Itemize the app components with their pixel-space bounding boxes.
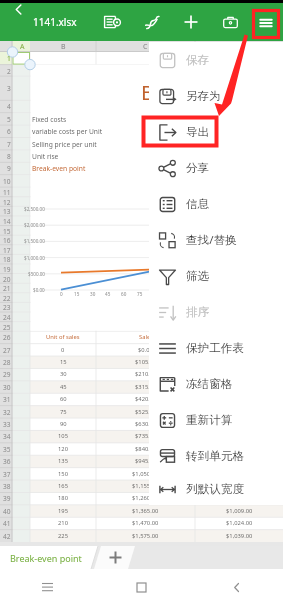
button[interactable]: Insert	[175, 6, 207, 38]
staticText: 5	[7, 115, 11, 124]
button[interactable]: 重新计算	[149, 402, 283, 438]
staticText: 转到单元格	[186, 449, 244, 464]
button[interactable]: Recent apps	[30, 570, 64, 604]
staticText: $1,050.00	[132, 470, 159, 478]
staticText: 14	[3, 217, 11, 226]
staticText: 35	[3, 445, 11, 454]
staticText: 27	[3, 346, 11, 355]
staticText: 排序	[186, 305, 210, 320]
staticText: 29	[3, 370, 11, 379]
staticText: 16	[3, 236, 11, 245]
button[interactable]: 分享	[149, 150, 283, 186]
staticText: B	[141, 78, 155, 102]
button[interactable]: Ink	[136, 6, 168, 38]
staticText: 30	[90, 291, 96, 297]
button[interactable]: 转到单元格	[149, 438, 283, 474]
button[interactable]: 查找/替换	[149, 222, 283, 258]
staticText: 60	[121, 291, 127, 297]
button[interactable]: 冻结窗格	[149, 366, 283, 402]
staticText: 165	[58, 482, 68, 490]
staticText: 180	[58, 494, 68, 502]
staticText: Unit rise	[32, 152, 59, 161]
staticText: 15	[74, 291, 80, 297]
staticText: Unit of sales	[46, 333, 80, 341]
staticText: 45	[105, 291, 111, 297]
staticText: 另存为	[186, 89, 221, 104]
staticText: 120	[58, 445, 68, 453]
staticText: $1,365.00	[132, 507, 159, 515]
staticText: 0	[60, 291, 63, 297]
staticText: $0.00	[33, 287, 45, 293]
staticText: 20	[3, 275, 11, 284]
staticText: 39	[3, 494, 11, 503]
staticText: B	[61, 42, 66, 52]
button[interactable]: 筛选	[149, 258, 283, 294]
button[interactable]: Back	[2, 0, 34, 25]
staticText: 3	[7, 84, 11, 93]
staticText: 1141.xlsx	[33, 15, 77, 29]
staticText: A	[20, 42, 25, 52]
button[interactable]: 列默认宽度	[149, 474, 283, 505]
staticText: 分享	[186, 161, 210, 176]
staticText: 7	[7, 140, 11, 149]
button[interactable]: 另存为	[149, 78, 283, 114]
staticText: 32	[3, 408, 11, 417]
button[interactable]: Menu	[250, 7, 282, 39]
staticText: 保存	[186, 53, 210, 68]
staticText: Sales	[139, 333, 153, 341]
staticText: $315.00	[135, 383, 157, 391]
staticText: 41	[3, 519, 11, 528]
button[interactable]: Home	[124, 570, 158, 604]
staticText: 31	[3, 395, 11, 404]
staticText: 15	[3, 227, 11, 236]
staticText: 23	[3, 303, 11, 312]
staticText: Fixed costs	[32, 115, 67, 124]
staticText: $0.00	[138, 346, 153, 354]
staticText: 8	[7, 152, 11, 161]
staticText: $210.00	[135, 370, 157, 378]
staticText: 25	[3, 323, 11, 332]
button[interactable]: Back	[219, 570, 253, 604]
staticText: 列默认宽度	[186, 482, 244, 497]
button[interactable]: Tools	[214, 6, 246, 38]
staticText: 37	[3, 470, 11, 479]
staticText: Selling price per unit	[32, 140, 97, 149]
staticText: 1	[7, 54, 11, 63]
staticText: 26	[3, 333, 11, 342]
button[interactable]: 保护工作表	[149, 330, 283, 366]
staticText: $1,260.00	[132, 494, 159, 502]
button[interactable]: 信息	[149, 186, 283, 222]
staticText: 6	[7, 127, 11, 136]
staticText: 195	[58, 507, 68, 515]
staticText: 信息	[186, 197, 210, 212]
staticText: 冻结窗格	[186, 377, 233, 392]
staticText: 38	[3, 482, 11, 491]
staticText: $945.00	[135, 457, 157, 465]
button[interactable]: 排序	[149, 294, 283, 330]
button[interactable]: Add sheet	[98, 546, 132, 569]
staticText: 60	[60, 395, 67, 403]
button[interactable]: Break-even point	[0, 546, 92, 569]
staticText: 17	[3, 246, 11, 255]
staticText: 150	[58, 470, 68, 478]
staticText: 90	[60, 420, 67, 428]
staticText: $1,039.00	[226, 532, 253, 540]
staticText: $840.00	[135, 445, 157, 453]
staticText: 30	[60, 370, 67, 378]
button[interactable]: 导出	[149, 114, 283, 150]
staticText: 19	[3, 265, 11, 274]
staticText: $1,470.00	[132, 519, 159, 527]
staticText: 33	[3, 420, 11, 429]
staticText: Break-even point	[10, 552, 82, 564]
button[interactable]: Preview	[97, 6, 129, 38]
staticText: 查找/替换	[186, 232, 237, 248]
staticText: 13	[3, 207, 11, 216]
button[interactable]: 保存	[149, 42, 283, 78]
staticText: $1,009.00	[226, 507, 253, 515]
staticText: 4	[7, 102, 11, 111]
staticText: 重新计算	[186, 413, 233, 428]
staticText: $1,155.00	[132, 482, 159, 490]
staticText: 225	[58, 532, 68, 540]
staticText: 75	[60, 408, 67, 416]
staticText: $2,000.00	[24, 222, 45, 228]
